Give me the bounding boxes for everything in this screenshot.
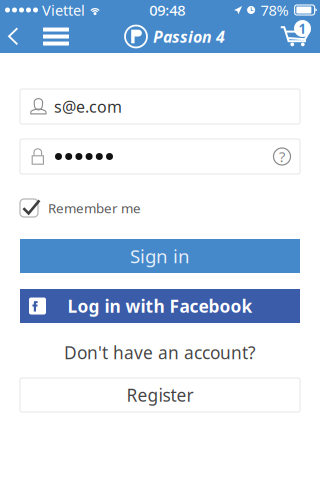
staticText: Don't have an account?: [64, 341, 256, 364]
staticText: Log in with Facebook: [67, 294, 252, 317]
button[interactable]: Back: [0, 20, 25, 53]
staticText: s@e.com: [54, 96, 122, 117]
staticText: Remember me: [48, 199, 141, 217]
staticText: 78%: [261, 0, 289, 20]
staticText: Register: [126, 383, 193, 406]
staticText: Sign in: [130, 244, 190, 268]
button[interactable]: Log in with Facebook: [20, 289, 300, 323]
button[interactable]: Register: [20, 378, 300, 412]
button[interactable]: Sign in: [20, 239, 300, 273]
staticText: Passion 4: [153, 26, 225, 47]
staticText: 1: [298, 20, 306, 37]
button[interactable]: Cart: [279, 20, 320, 53]
staticText: Viettel: [42, 0, 85, 20]
staticText: ?: [279, 147, 285, 166]
button[interactable]: Remember me: [20, 196, 300, 220]
staticText: 09:48: [149, 0, 185, 20]
button[interactable]: Menu: [25, 20, 87, 53]
